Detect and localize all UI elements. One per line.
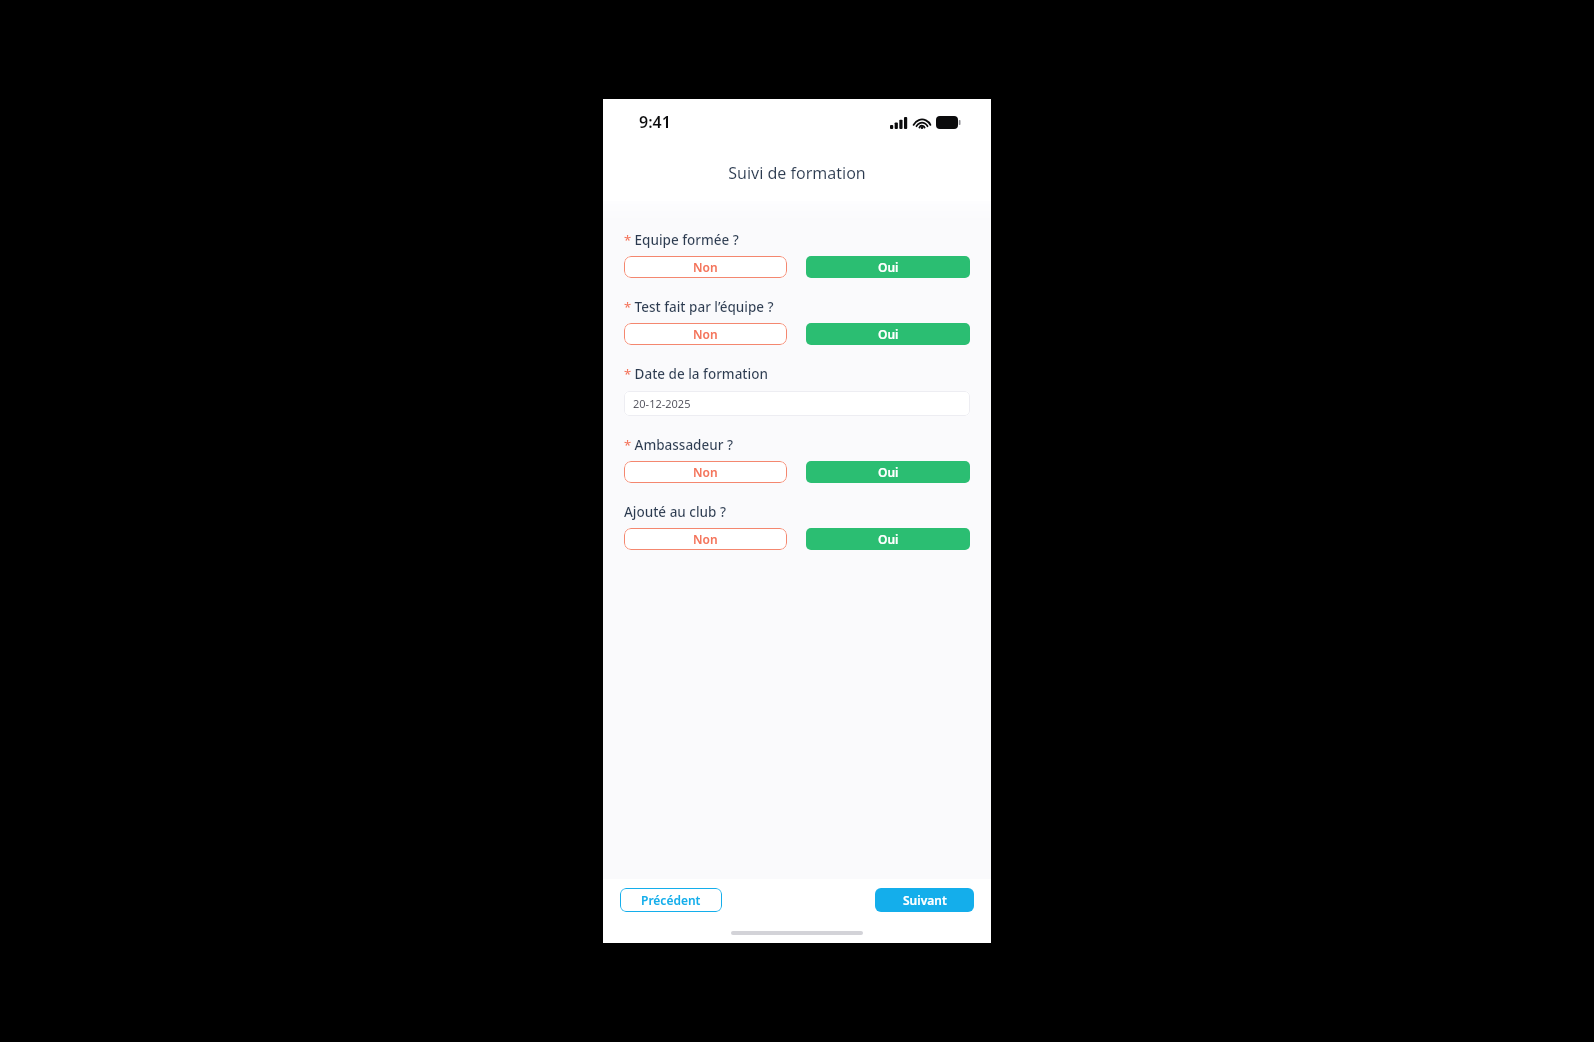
button[interactable]: Oui xyxy=(806,256,970,278)
button[interactable]: Suivant xyxy=(875,888,974,912)
staticText: * Ambassadeur ? xyxy=(624,436,733,454)
button[interactable]: Non xyxy=(624,461,787,483)
staticText: Non xyxy=(693,326,718,342)
staticText: 20-12-2025 xyxy=(633,396,691,411)
staticText: Précédent xyxy=(641,892,701,908)
staticText: Non xyxy=(693,464,718,480)
button[interactable]: Non xyxy=(624,528,787,550)
button[interactable]: Non xyxy=(624,323,787,345)
button[interactable]: Oui xyxy=(806,323,970,345)
staticText: Oui xyxy=(878,531,899,547)
staticText: 9:41 xyxy=(639,111,671,133)
staticText: * Test fait par l’équipe ? xyxy=(624,298,774,316)
staticText: Ajouté au club ? xyxy=(624,503,726,521)
button[interactable]: Précédent xyxy=(620,888,722,912)
staticText: Oui xyxy=(878,464,899,480)
staticText: Non xyxy=(693,531,718,547)
staticText: Non xyxy=(693,259,718,275)
button[interactable]: Oui xyxy=(806,528,970,550)
staticText: Oui xyxy=(878,326,899,342)
button[interactable]: Oui xyxy=(806,461,970,483)
button[interactable]: Non xyxy=(624,256,787,278)
staticText: Suivant xyxy=(903,892,947,908)
staticText: Suivi de formation xyxy=(728,162,866,184)
staticText: Oui xyxy=(878,259,899,275)
staticText: * Date de la formation xyxy=(624,365,768,383)
staticText: * Equipe formée ? xyxy=(624,231,739,249)
button[interactable]: 20-12-2025 xyxy=(624,391,970,416)
